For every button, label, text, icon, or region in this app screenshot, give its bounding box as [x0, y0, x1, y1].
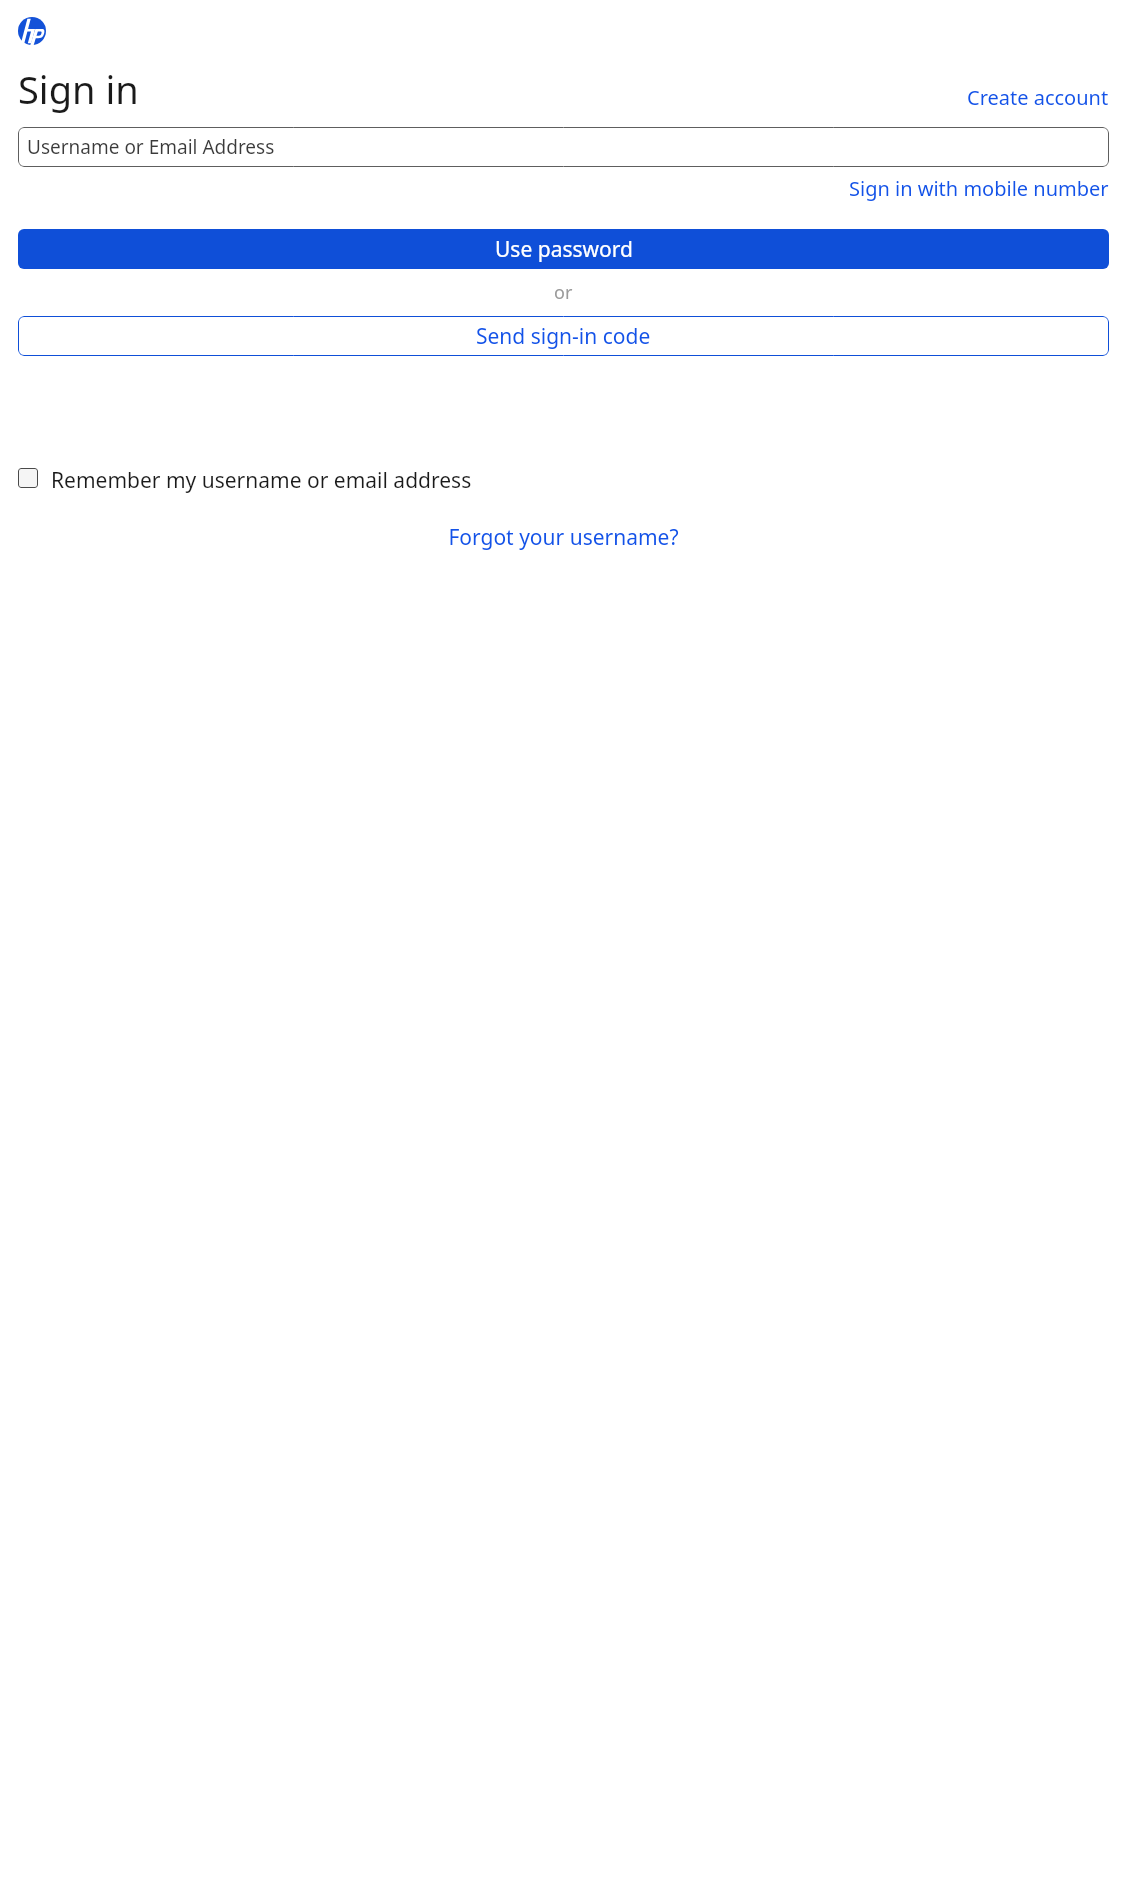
- staticText: Send sign-in code: [476, 322, 651, 351]
- button[interactable]: Use password: [18, 229, 1109, 269]
- staticText: Sign in: [18, 63, 139, 115]
- button[interactable]: Send sign-in code: [18, 316, 1109, 356]
- staticText: or: [554, 280, 573, 305]
- staticText: Remember my username or email address: [51, 466, 897, 495]
- button[interactable]: Remember my username or email address: [18, 466, 1109, 495]
- button[interactable]: Sign in with mobile number: [849, 175, 1109, 202]
- other: HP logo: [18, 17, 46, 45]
- staticText: Create account: [967, 84, 1109, 111]
- staticText: Forgot your username?: [448, 523, 679, 552]
- staticText: Use password: [495, 235, 633, 264]
- button[interactable]: Username or Email Address: [18, 127, 1109, 167]
- staticText: Username or Email Address: [27, 134, 275, 160]
- button[interactable]: Create account: [967, 84, 1109, 115]
- staticText: Sign in with mobile number: [849, 175, 1109, 202]
- button[interactable]: Forgot your username?: [448, 523, 679, 552]
